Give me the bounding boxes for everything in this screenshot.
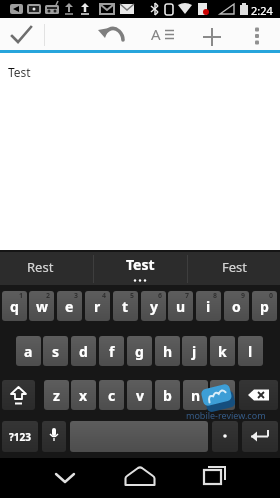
staticText: s — [52, 342, 60, 361]
button[interactable]: f — [99, 336, 124, 366]
staticText: 4 — [102, 291, 107, 301]
staticText: Fest — [222, 258, 247, 276]
button[interactable] — [2, 380, 35, 410]
staticText: v — [136, 386, 144, 405]
button[interactable]: p — [252, 291, 277, 321]
button[interactable]: b — [155, 380, 180, 410]
staticText: Test — [8, 64, 31, 80]
button[interactable]: u — [168, 291, 193, 321]
staticText: e — [65, 297, 74, 316]
button[interactable]: m — [210, 380, 235, 410]
button[interactable]: l — [238, 336, 263, 366]
staticText: q — [10, 297, 19, 316]
button[interactable]: x — [71, 380, 96, 410]
button[interactable]: a — [16, 336, 41, 366]
staticText: a — [24, 342, 33, 361]
staticText: 9 — [241, 291, 246, 301]
button[interactable]: t — [113, 291, 138, 321]
button[interactable]: n — [183, 380, 208, 410]
button[interactable]: r — [85, 291, 110, 321]
staticText: y — [150, 297, 158, 316]
staticText: 1 — [19, 291, 24, 301]
staticText: 6 — [158, 291, 163, 301]
staticText: z — [53, 386, 60, 405]
button[interactable]: y — [141, 291, 166, 321]
staticText: j — [192, 342, 197, 361]
staticText: u — [176, 297, 186, 316]
staticText: 0 — [269, 291, 274, 301]
staticText: g — [135, 342, 144, 361]
button[interactable] — [42, 421, 66, 452]
staticText: l — [248, 342, 253, 361]
staticText: 7 — [185, 291, 190, 301]
staticText: m — [216, 386, 230, 405]
button[interactable]: c — [99, 380, 124, 410]
button[interactable] — [196, 18, 230, 50]
button[interactable]: i — [196, 291, 221, 321]
staticText: 8 — [213, 291, 218, 301]
button[interactable]: Test — [94, 250, 187, 285]
staticText: p — [260, 297, 269, 316]
staticText: h — [163, 342, 173, 361]
staticText: c — [108, 386, 116, 405]
button[interactable] — [242, 18, 272, 50]
staticText: Test — [126, 255, 155, 274]
staticText: 2 — [46, 291, 51, 301]
button[interactable]: ?123 — [2, 421, 38, 452]
staticText: r — [94, 297, 101, 316]
button[interactable]: s — [43, 336, 68, 366]
staticText: 5 — [130, 291, 135, 301]
button[interactable] — [94, 18, 132, 50]
staticText: t — [122, 297, 129, 316]
staticText: mobile-review.com — [186, 409, 266, 421]
staticText: 2:24 — [251, 3, 273, 18]
button[interactable] — [115, 458, 165, 498]
button[interactable] — [239, 380, 278, 410]
staticText: b — [163, 386, 172, 405]
staticText: n — [191, 386, 201, 405]
button[interactable]: w — [29, 291, 54, 321]
button[interactable] — [40, 458, 90, 498]
button[interactable] — [190, 458, 240, 498]
staticText: d — [79, 342, 88, 361]
staticText: ?123 — [9, 430, 31, 444]
staticText: 3 — [74, 291, 79, 301]
staticText: w — [36, 297, 48, 316]
button[interactable]: k — [210, 336, 235, 366]
button[interactable]: q — [2, 291, 27, 321]
button[interactable]: Fest — [188, 250, 280, 285]
staticText: o — [232, 297, 241, 316]
button[interactable] — [242, 421, 278, 452]
button[interactable]: A — [146, 18, 182, 50]
button[interactable]: v — [127, 380, 152, 410]
staticText: Rest — [27, 258, 54, 276]
button[interactable]: o — [224, 291, 249, 321]
staticText: x — [79, 386, 88, 405]
button[interactable]: e — [57, 291, 82, 321]
button[interactable]: Rest — [0, 250, 93, 285]
button[interactable] — [70, 421, 208, 452]
button[interactable] — [0, 18, 44, 50]
button[interactable]: j — [182, 336, 207, 366]
button[interactable]: z — [44, 380, 69, 410]
button[interactable] — [212, 421, 238, 452]
staticText: i — [206, 297, 211, 316]
button[interactable]: g — [127, 336, 152, 366]
staticText: f — [109, 342, 115, 361]
button[interactable]: h — [155, 336, 180, 366]
staticText: A — [151, 24, 161, 44]
staticText: k — [218, 342, 227, 361]
button[interactable]: d — [71, 336, 96, 366]
